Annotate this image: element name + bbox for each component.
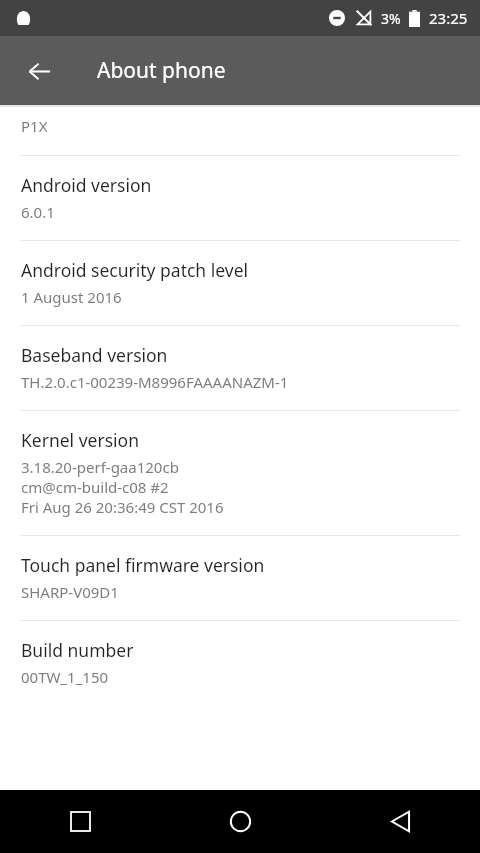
button[interactable]: Touch panel firmware version	[0, 536, 480, 620]
staticText: Touch panel firmware version	[21, 553, 265, 577]
staticText: 6.0.1	[21, 202, 55, 222]
staticText: 1 August 2016	[21, 287, 122, 307]
staticText: Android version	[21, 173, 152, 197]
staticText: About phone	[97, 56, 226, 85]
button[interactable]: Home	[160, 790, 320, 853]
staticText: 3.18.20-perf-gaa120cb	[21, 457, 179, 477]
staticText: Fri Aug 26 20:36:49 CST 2016	[21, 497, 224, 517]
button[interactable]: Back	[320, 790, 480, 853]
staticText: TH.2.0.c1-00239-M8996FAAAANAZM-1	[21, 372, 289, 392]
staticText: Build number	[21, 638, 134, 662]
staticText: SHARP-V09D1	[21, 582, 119, 602]
button[interactable]: Build number	[0, 621, 480, 705]
button[interactable]: Recent apps	[0, 790, 160, 853]
button[interactable]: Navigate up	[16, 48, 62, 94]
button[interactable]: P1X	[0, 108, 480, 155]
staticText: 3%	[381, 9, 401, 28]
staticText: Android security patch level	[21, 258, 249, 282]
button[interactable]: Android security patch level	[0, 241, 480, 325]
staticText: P1X	[21, 116, 48, 136]
button[interactable]: Kernel version	[0, 411, 480, 535]
staticText: Baseband version	[21, 343, 168, 367]
staticText: 23:25	[429, 8, 468, 28]
button[interactable]: Baseband version	[0, 326, 480, 410]
staticText: Kernel version	[21, 428, 139, 452]
button[interactable]: Android version	[0, 156, 480, 240]
staticText: 00TW_1_150	[21, 667, 109, 687]
staticText: cm@cm-build-c08 #2	[21, 477, 169, 497]
